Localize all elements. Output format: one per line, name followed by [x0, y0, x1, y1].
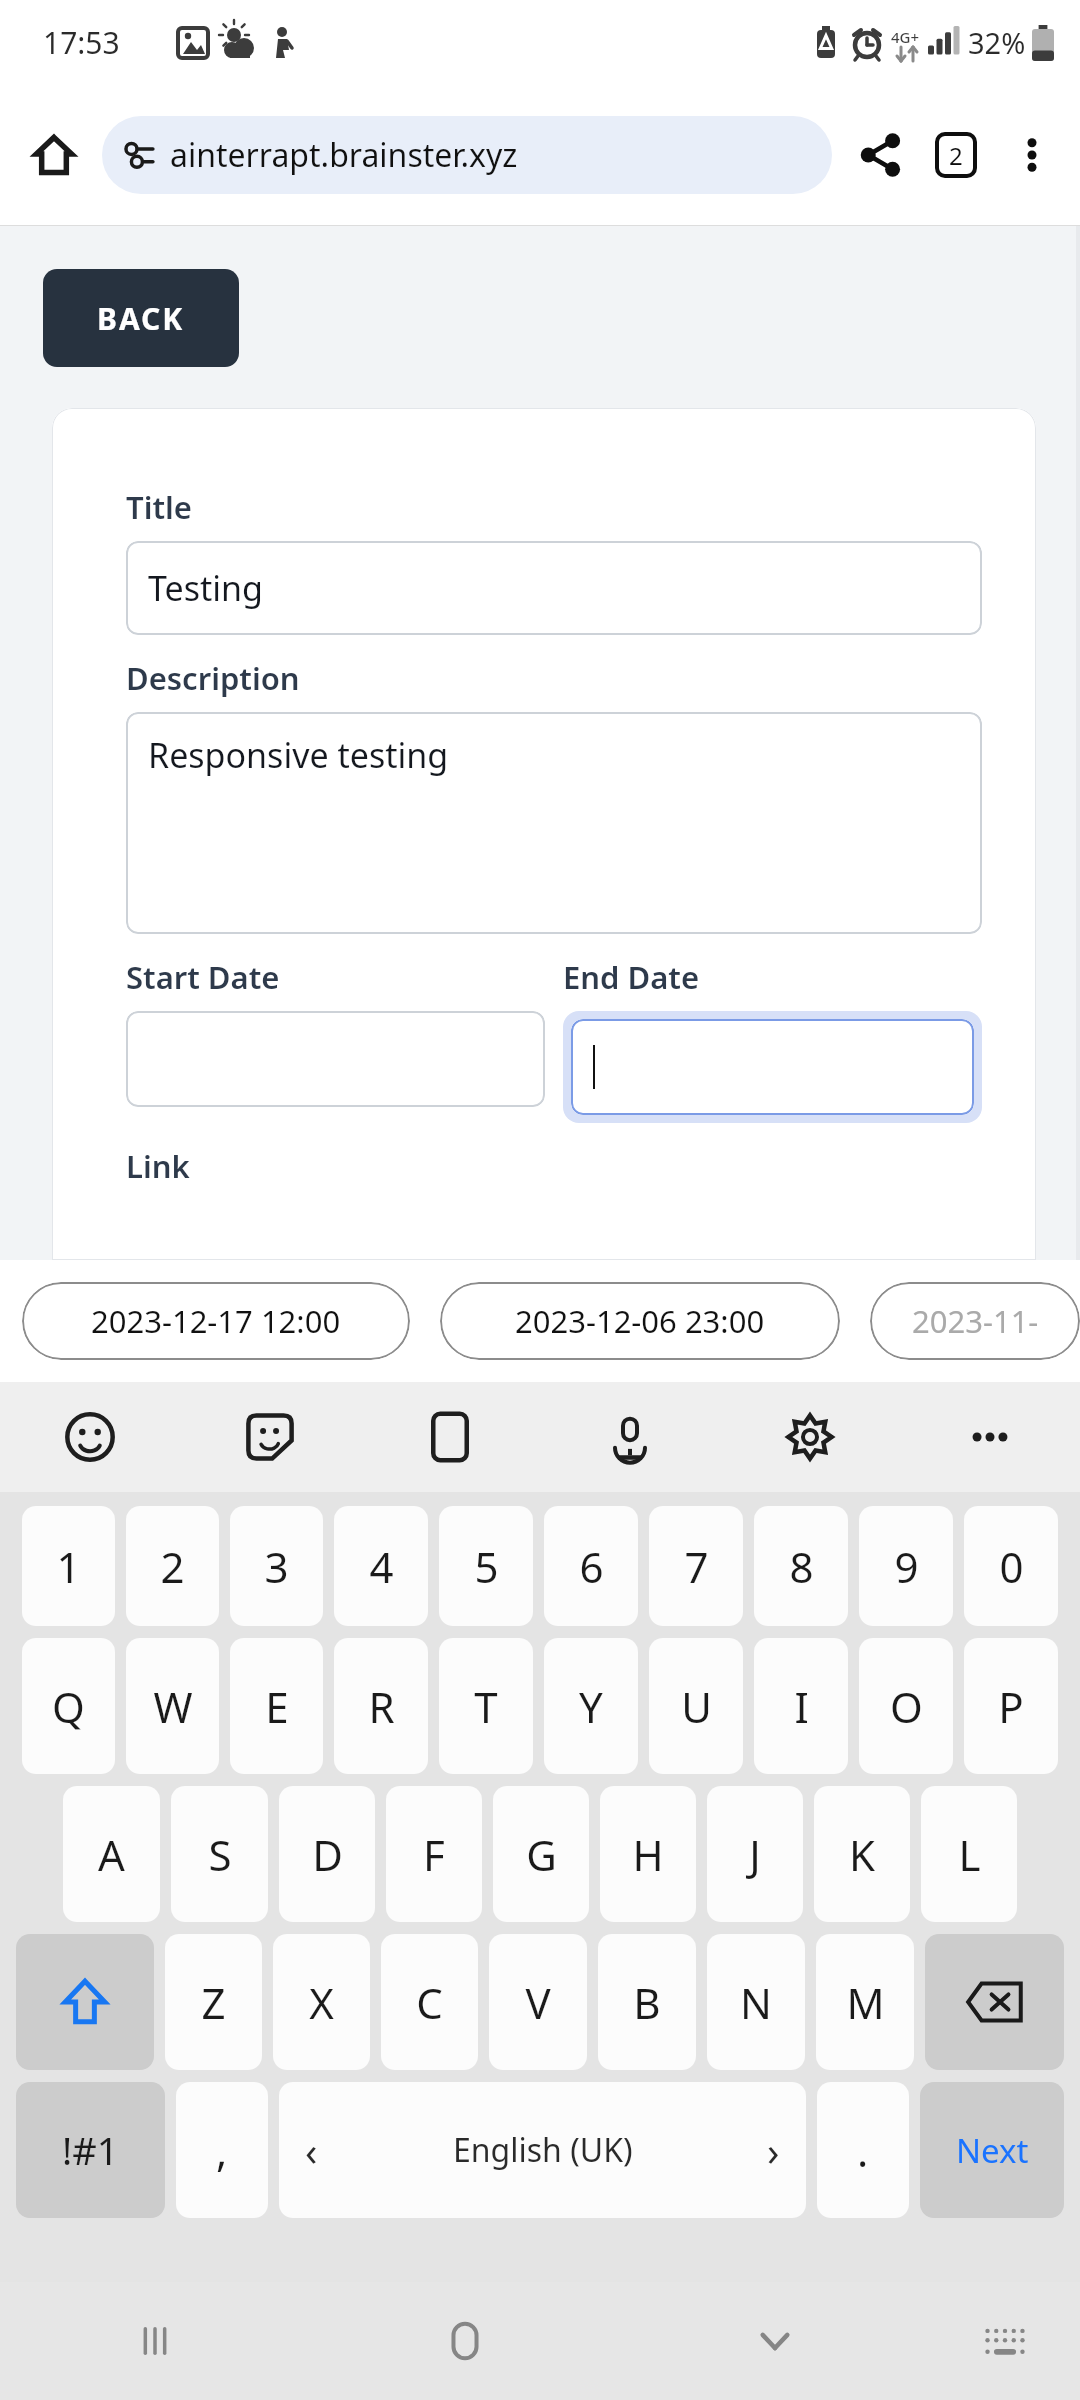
staticText: 1 [56, 1538, 81, 1595]
button[interactable]: E [230, 1638, 323, 1774]
button[interactable]: Recent apps [0, 2282, 310, 2400]
staticText: BACK [97, 298, 185, 339]
staticText: › [767, 2123, 780, 2177]
button[interactable]: Tabs, 2 open [918, 117, 994, 193]
button[interactable]: . [817, 2082, 909, 2218]
staticText: K [849, 1826, 875, 1883]
button[interactable]: X [273, 1934, 370, 2070]
button[interactable] [571, 1019, 974, 1115]
staticText: D [312, 1826, 343, 1883]
staticText: T [474, 1678, 498, 1735]
staticText: 2023-11- [912, 1300, 1039, 1342]
staticText: Title [126, 486, 192, 528]
button[interactable]: GIF [360, 1382, 540, 1492]
button[interactable]: Q [22, 1638, 115, 1774]
button[interactable]: Y [544, 1638, 638, 1774]
button[interactable]: R [334, 1638, 428, 1774]
button[interactable]: Backspace [925, 1934, 1064, 2070]
staticText: O [890, 1678, 923, 1735]
staticText: 2 [949, 139, 963, 172]
staticText: 0 [999, 1538, 1024, 1595]
staticText: Start Date [126, 956, 280, 998]
button[interactable]: Home [310, 2282, 620, 2400]
button[interactable]: Shift [16, 1934, 154, 2070]
button[interactable]: ‹ [279, 2082, 806, 2218]
button[interactable]: Stickers [180, 1382, 360, 1492]
button[interactable]: 4 [334, 1506, 428, 1626]
button[interactable]: BACK [43, 269, 239, 367]
staticText: E [265, 1678, 289, 1735]
staticText: L [958, 1826, 981, 1883]
button[interactable]: Emoji [0, 1382, 180, 1492]
button[interactable]: 2023-12-06 23:00 [440, 1282, 840, 1360]
button[interactable]: Voice input [540, 1382, 720, 1492]
button[interactable]: 2 [126, 1506, 219, 1626]
button[interactable]: More [900, 1382, 1080, 1492]
button[interactable]: 9 [859, 1506, 953, 1626]
button[interactable]: N [707, 1934, 805, 2070]
staticText: Z [201, 1974, 226, 2031]
button[interactable]: 3 [230, 1506, 323, 1626]
staticText: 2023-12-17 12:00 [91, 1300, 341, 1342]
button[interactable]: K [814, 1786, 910, 1922]
staticText: S [208, 1826, 232, 1883]
button[interactable]: Keyboard settings [720, 1382, 900, 1492]
staticText: 4G+ [891, 27, 920, 47]
button[interactable]: Switch keyboard [930, 2282, 1080, 2400]
button[interactable]: 7 [649, 1506, 743, 1626]
button[interactable]: A [63, 1786, 160, 1922]
staticText: 2 [160, 1538, 185, 1595]
button[interactable]: M [816, 1934, 914, 2070]
button[interactable]: 2023-11- [870, 1282, 1080, 1360]
staticText: End Date [563, 956, 700, 998]
button[interactable]: H [600, 1786, 696, 1922]
button[interactable]: !#1 [16, 2082, 165, 2218]
button[interactable]: C [381, 1934, 478, 2070]
button[interactable]: Z [165, 1934, 262, 2070]
staticText: Responsive testing [148, 732, 449, 778]
button[interactable]: , [176, 2082, 268, 2218]
staticText: 5 [474, 1538, 499, 1595]
staticText: . [857, 2122, 869, 2179]
button[interactable]: 2023-12-17 12:00 [22, 1282, 410, 1360]
button[interactable]: J [707, 1786, 803, 1922]
staticText: !#1 [62, 2124, 119, 2176]
staticText: H [632, 1826, 664, 1883]
button[interactable]: D [279, 1786, 375, 1922]
button[interactable]: Testing [126, 541, 982, 635]
button[interactable]: Next [920, 2082, 1064, 2218]
button[interactable]: O [859, 1638, 953, 1774]
button[interactable]: More options [994, 117, 1070, 193]
button[interactable]: I [754, 1638, 848, 1774]
button[interactable]: Share [842, 117, 918, 193]
staticText: 17:53 [43, 22, 120, 63]
button[interactable]: V [489, 1934, 587, 2070]
button[interactable]: 5 [439, 1506, 533, 1626]
button[interactable]: Hide keyboard [620, 2282, 930, 2400]
button[interactable]: B [598, 1934, 696, 2070]
button[interactable]: 1 [22, 1506, 115, 1626]
button[interactable] [126, 1011, 545, 1107]
button[interactable]: ainterrapt.brainster.xyz [102, 116, 832, 194]
button[interactable]: T [439, 1638, 533, 1774]
staticText: 9 [894, 1538, 919, 1595]
button[interactable]: G [493, 1786, 589, 1922]
button[interactable]: L [921, 1786, 1017, 1922]
staticText: U [681, 1678, 712, 1735]
button[interactable]: P [964, 1638, 1058, 1774]
staticText: 4 [369, 1538, 394, 1595]
staticText: A [98, 1826, 125, 1883]
button[interactable]: Home [18, 119, 90, 191]
button[interactable]: S [171, 1786, 268, 1922]
button[interactable]: 6 [544, 1506, 638, 1626]
button[interactable]: 0 [964, 1506, 1058, 1626]
staticText: R [368, 1678, 395, 1735]
button[interactable]: 8 [754, 1506, 848, 1626]
button[interactable]: Responsive testing [126, 712, 982, 934]
staticText: Link [126, 1145, 190, 1187]
button[interactable]: F [386, 1786, 482, 1922]
button[interactable]: U [649, 1638, 743, 1774]
button[interactable]: W [126, 1638, 219, 1774]
staticText: F [423, 1826, 445, 1883]
staticText: 8 [789, 1538, 814, 1595]
